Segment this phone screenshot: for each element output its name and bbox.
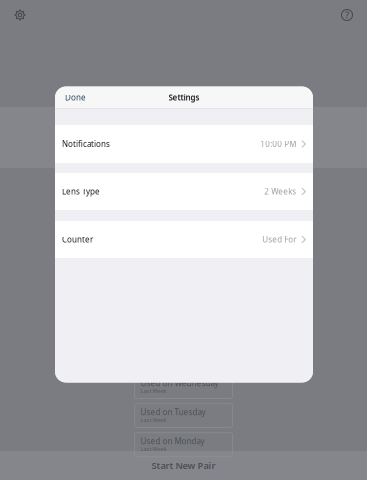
button[interactable]: Done <box>55 86 115 108</box>
staticText: ? <box>345 9 349 21</box>
button[interactable]: Notifications <box>55 125 313 163</box>
button[interactable]: Used on Tuesday <box>134 404 232 427</box>
staticText: 10:00 PM <box>260 139 296 149</box>
staticText: Counter <box>62 234 93 245</box>
button[interactable]: Help <box>333 1 361 29</box>
staticText: 2 Weeks <box>264 186 296 197</box>
staticText: Done <box>65 92 86 103</box>
staticText: Lens Type <box>62 186 100 197</box>
staticText: Last Week <box>140 445 166 452</box>
staticText: Last Week <box>140 387 166 394</box>
staticText: Last Week <box>140 416 166 423</box>
staticText: Used on Tuesday <box>140 407 205 417</box>
staticText: Used on Wednesday <box>140 378 218 388</box>
button[interactable]: Used on Monday <box>134 433 232 456</box>
button[interactable]: Start New Pair <box>0 451 367 480</box>
button[interactable]: Counter <box>55 221 313 258</box>
staticText: Start New Pair <box>151 459 215 472</box>
button[interactable]: Settings <box>6 1 34 29</box>
staticText: Used on Monday <box>140 436 204 446</box>
staticText: Notifications <box>62 139 110 149</box>
button[interactable]: Used on Wednesday <box>134 375 232 398</box>
staticText: Settings <box>168 92 199 103</box>
staticText: Used For <box>262 234 296 245</box>
button[interactable]: Lens Type <box>55 173 313 210</box>
